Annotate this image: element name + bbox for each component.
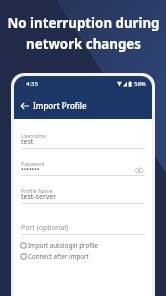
staticText: test: [21, 137, 34, 147]
staticText: Profile Name: [21, 187, 53, 194]
button[interactable]: Import autologin profile: [14, 240, 152, 250]
staticText: Import Profile: [33, 100, 87, 111]
other: Show password: [135, 168, 143, 173]
staticText: network changes: [26, 35, 141, 53]
button[interactable]: Connect after import: [14, 251, 152, 261]
staticText: No interruption during: [7, 14, 160, 32]
staticText: •••••••: [21, 165, 40, 175]
button[interactable]: Back: [18, 99, 32, 113]
button[interactable]: Username: [14, 133, 152, 150]
staticText: 58%: [134, 80, 146, 88]
staticText: Connect after import: [28, 252, 89, 260]
staticText: Port (optional): [21, 223, 69, 233]
staticText: 4:35: [26, 80, 38, 88]
button[interactable]: Port (optional): [14, 225, 152, 236]
staticText: Username: [21, 132, 47, 139]
staticText: Password: [21, 160, 45, 167]
staticText: Import autologin profile: [28, 241, 99, 249]
button[interactable]: Profile Name: [14, 188, 152, 205]
staticText: test-server: [21, 192, 57, 202]
button[interactable]: Password: [14, 161, 152, 177]
